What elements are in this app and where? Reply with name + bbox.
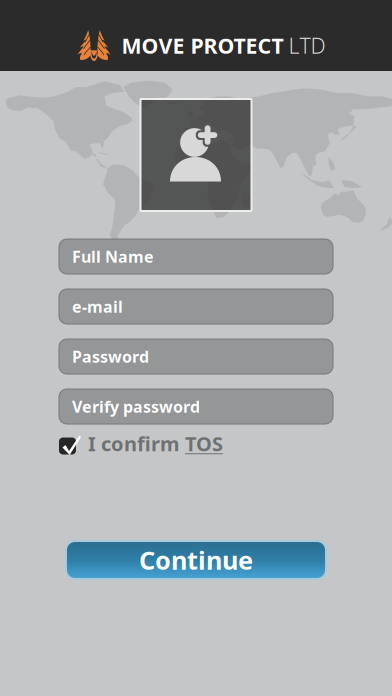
button[interactable]: Verify password (59, 389, 333, 424)
staticText: Verify password (72, 396, 200, 417)
button[interactable]: Full Name (59, 239, 333, 274)
staticText: Password (72, 346, 149, 367)
button[interactable]: TOS (185, 430, 223, 457)
staticText: LTD (288, 31, 325, 60)
staticText: MOVE PROTECT (121, 31, 283, 60)
staticText: Full Name (72, 246, 154, 267)
button[interactable]: Continue (65, 540, 327, 580)
staticText: I confirm (88, 430, 180, 457)
staticText: TOS (185, 430, 223, 457)
staticText: e-mail (72, 296, 123, 317)
button[interactable]: e-mail (59, 289, 333, 324)
button[interactable]: Add profile photo (140, 99, 251, 211)
button[interactable]: Password (59, 339, 333, 374)
staticText: Continue (139, 543, 253, 577)
button[interactable]: Confirm terms of service (59, 430, 81, 457)
